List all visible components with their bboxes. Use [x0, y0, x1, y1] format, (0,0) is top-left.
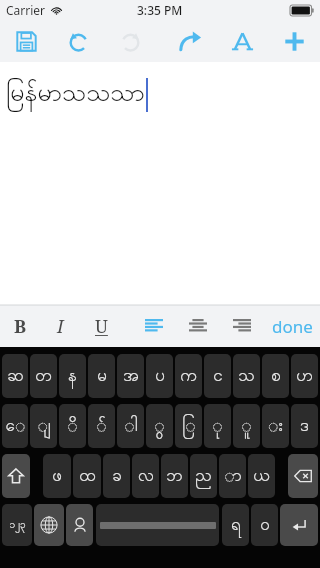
staticText: ူ	[241, 414, 252, 439]
button[interactable]: ယ	[248, 454, 275, 498]
staticText: Carrier	[6, 2, 46, 18]
button[interactable]: Return	[280, 504, 318, 546]
staticText: ထ	[79, 464, 96, 489]
staticText: မ	[97, 364, 107, 389]
staticText: ိ	[67, 414, 78, 439]
button[interactable]: ၁၂၃	[2, 504, 32, 546]
button[interactable]: done	[264, 305, 320, 347]
button[interactable]: ာ	[219, 454, 246, 498]
button[interactable]: ေ	[2, 404, 28, 448]
button[interactable]: Redo	[104, 20, 156, 62]
staticText: ပ	[155, 364, 165, 389]
button[interactable]: Backspace	[288, 454, 318, 498]
button[interactable]: Space	[96, 504, 219, 546]
staticText: ဖ	[52, 464, 62, 489]
staticText: က	[180, 364, 197, 389]
button[interactable]: ဖ	[43, 454, 71, 498]
button[interactable]: ဘ	[161, 454, 188, 498]
staticText: ရ	[231, 513, 241, 538]
staticText: ု	[212, 414, 223, 439]
staticText: မြန်မာသသသာ	[6, 76, 145, 113]
staticText: း	[268, 414, 283, 439]
button[interactable]: ်	[88, 404, 115, 448]
button[interactable]: သ	[233, 354, 260, 398]
button[interactable]: ရ	[222, 504, 249, 546]
button[interactable]: ိ	[59, 404, 86, 448]
button[interactable]: ျ	[30, 404, 57, 448]
button[interactable]: န	[59, 354, 86, 398]
staticText: ၁၂၃	[9, 518, 26, 533]
staticText: ည	[195, 464, 212, 489]
button[interactable]: ြ	[175, 404, 202, 448]
staticText: ဟ	[296, 364, 313, 389]
staticText: အ	[123, 364, 139, 389]
button[interactable]: U	[80, 305, 122, 347]
staticText: ဆ	[7, 364, 24, 389]
button[interactable]: Add	[268, 20, 320, 62]
staticText: ဒ	[300, 414, 309, 439]
button[interactable]: ူ	[233, 404, 260, 448]
button[interactable]: ု	[204, 404, 231, 448]
staticText: ဘ	[166, 464, 183, 489]
staticText: ေ	[5, 414, 26, 439]
button[interactable]: Dictate	[66, 504, 93, 546]
button[interactable]: ထ	[73, 454, 101, 498]
staticText: ာ	[224, 464, 242, 489]
button[interactable]: လ	[132, 454, 159, 498]
button[interactable]: Share	[164, 20, 216, 62]
button[interactable]: Save	[0, 20, 52, 62]
button[interactable]: က	[175, 354, 202, 398]
button[interactable]: Font	[216, 20, 268, 62]
staticText: ြ	[182, 414, 196, 439]
button[interactable]: အ	[117, 354, 144, 398]
button[interactable]: B	[0, 305, 40, 347]
button[interactable]: စ	[262, 354, 289, 398]
staticText: B	[14, 314, 27, 339]
button[interactable]: ပ	[146, 354, 173, 398]
button[interactable]: င	[204, 354, 231, 398]
staticText: န	[68, 364, 77, 389]
staticText: U	[95, 314, 108, 339]
staticText: စ	[271, 364, 281, 389]
button[interactable]: ဝ	[251, 504, 278, 546]
staticText: ယ	[253, 464, 270, 489]
staticText: င	[213, 364, 223, 389]
button[interactable]: ွ	[146, 404, 173, 448]
button[interactable]: မ	[88, 354, 115, 398]
button[interactable]: Next keyboard	[34, 504, 64, 546]
staticText: သ	[238, 364, 255, 389]
button[interactable]: Align right	[220, 305, 264, 347]
button[interactable]: ဒ	[291, 404, 318, 448]
staticText: 3:35 PM	[137, 2, 183, 18]
button[interactable]: း	[262, 404, 289, 448]
staticText: ဝ	[260, 513, 270, 538]
staticText: ်	[96, 414, 107, 439]
staticText: ါ	[124, 414, 138, 439]
button[interactable]: Shift	[2, 454, 30, 498]
button[interactable]: ခ	[103, 454, 130, 498]
button[interactable]: ါ	[117, 404, 144, 448]
button[interactable]: ဟ	[291, 354, 318, 398]
button[interactable]: Undo	[52, 20, 104, 62]
staticText: ျ	[37, 414, 51, 439]
staticText: I	[57, 314, 64, 339]
button[interactable]: တ	[30, 354, 57, 398]
button[interactable]: Align center	[176, 305, 220, 347]
staticText: တ	[35, 364, 52, 389]
button[interactable]: ည	[190, 454, 217, 498]
button[interactable]: ဆ	[2, 354, 28, 398]
staticText: ွ	[154, 414, 165, 439]
staticText: ခ	[112, 464, 122, 489]
button[interactable]: I	[40, 305, 80, 347]
staticText: done	[272, 315, 313, 338]
button[interactable]: Align left	[132, 305, 176, 347]
staticText: လ	[138, 464, 154, 489]
